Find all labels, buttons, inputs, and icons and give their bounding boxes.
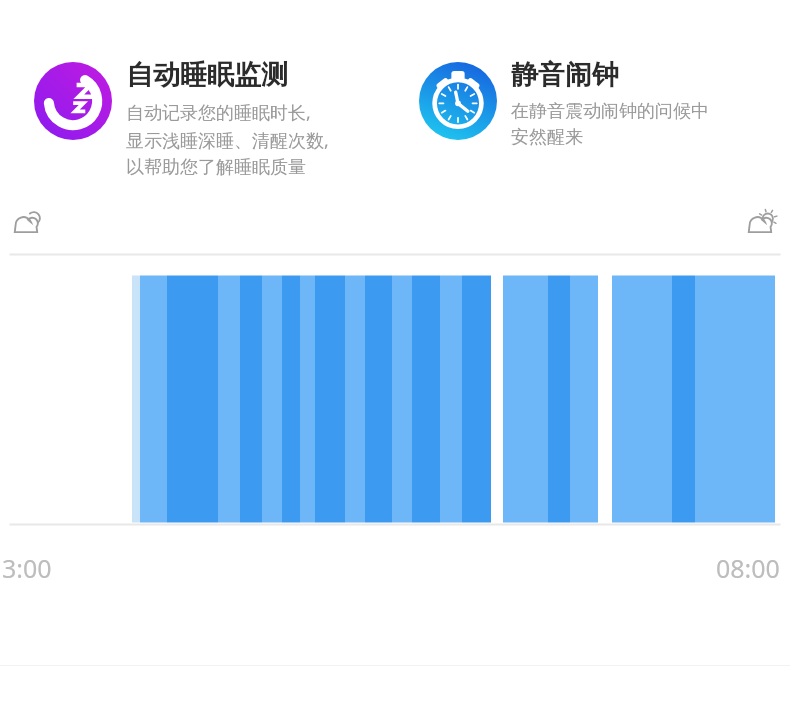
staticText: 在静音震动闹钟的问候中: [511, 100, 709, 123]
staticText: 自动睡眠监测: [126, 58, 288, 92]
other: 自动睡眠监测: [34, 62, 112, 140]
staticText: 静音闹钟: [511, 58, 619, 92]
staticText: 安然醒来: [511, 126, 583, 149]
other: 静音闹钟: [419, 62, 497, 140]
staticText: 自动记录您的睡眠时长,: [126, 100, 311, 125]
staticText: 以帮助您了解睡眠质量: [126, 156, 306, 179]
staticText: 显示浅睡深睡、清醒次数,: [126, 128, 329, 153]
button[interactable]: 夜间: [10, 207, 44, 241]
staticText: 08:00: [716, 551, 780, 585]
button[interactable]: [0, 244, 790, 544]
button[interactable]: 自动睡眠监测: [0, 58, 395, 182]
button[interactable]: 静音闹钟: [395, 58, 790, 152]
staticText: 3:00: [2, 551, 52, 585]
button[interactable]: 白天: [744, 207, 778, 241]
